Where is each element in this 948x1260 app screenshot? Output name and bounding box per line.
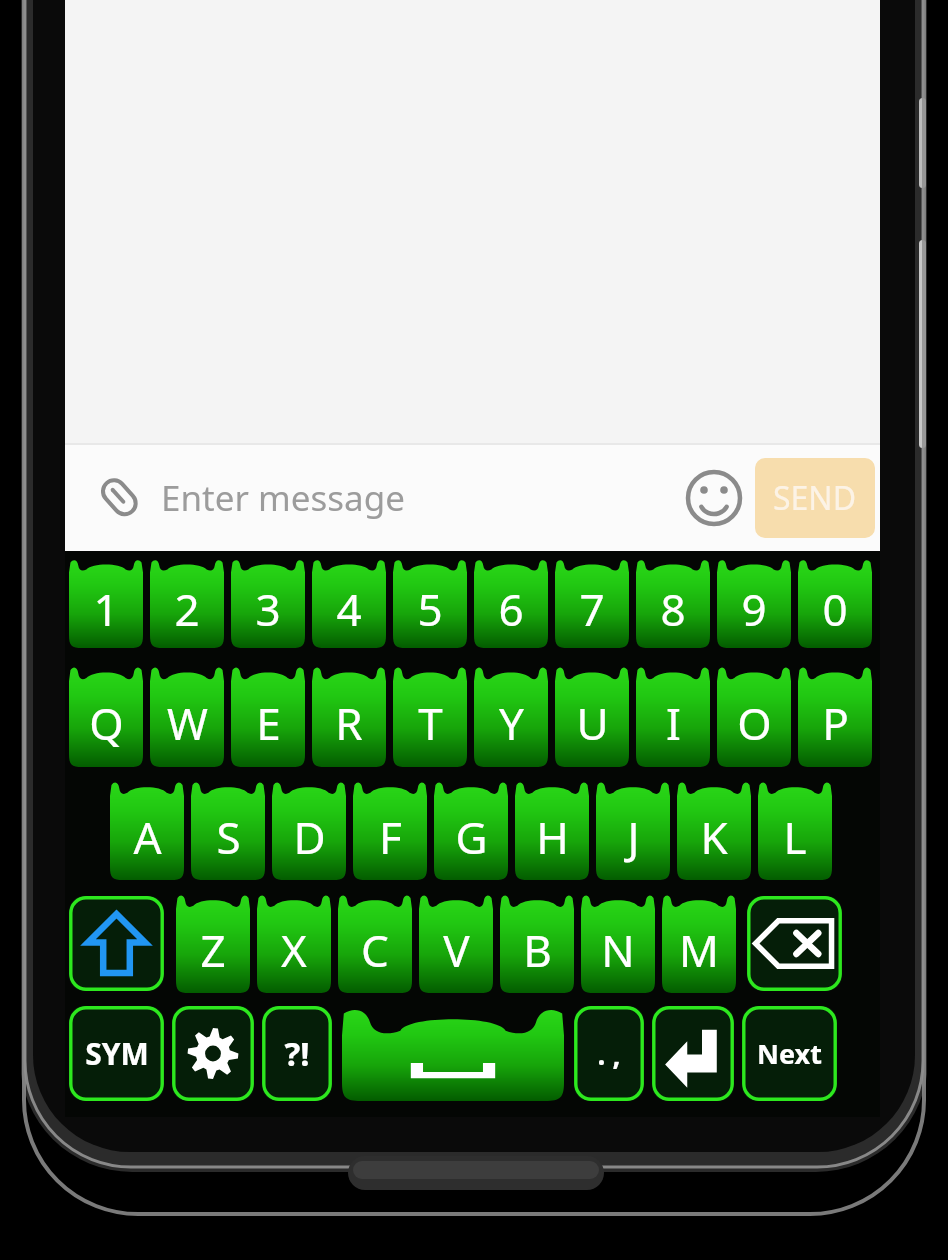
staticText: A xyxy=(133,807,162,867)
button[interactable]: Next xyxy=(742,1006,837,1101)
button[interactable]: . , xyxy=(574,1006,644,1101)
button[interactable]: T xyxy=(393,665,467,767)
staticText: Enter message xyxy=(161,474,681,522)
button[interactable]: Backspace xyxy=(747,896,842,991)
staticText: 8 xyxy=(660,579,686,639)
button[interactable]: 2 xyxy=(150,558,224,648)
button[interactable]: L xyxy=(758,780,832,880)
staticText: L xyxy=(783,807,807,867)
staticText: P xyxy=(822,693,849,753)
staticText: I xyxy=(666,693,681,753)
staticText: K xyxy=(700,807,728,867)
button[interactable]: E xyxy=(231,665,305,767)
staticText: V xyxy=(443,920,470,980)
staticText: D xyxy=(293,807,326,867)
staticText: 9 xyxy=(741,579,767,639)
staticText: 5 xyxy=(417,579,443,639)
button[interactable]: W xyxy=(150,665,224,767)
button[interactable]: J xyxy=(596,780,670,880)
staticText: B xyxy=(523,920,552,980)
staticText: U xyxy=(576,693,609,753)
staticText: ?! xyxy=(284,1031,310,1076)
staticText: X xyxy=(281,920,307,980)
button[interactable]: SEND xyxy=(755,458,875,538)
staticText: E xyxy=(256,693,281,753)
button[interactable]: Y xyxy=(474,665,548,767)
staticText: W xyxy=(167,693,208,753)
staticText: 2 xyxy=(174,579,200,639)
button[interactable]: R xyxy=(312,665,386,767)
button[interactable]: P xyxy=(798,665,872,767)
staticText: 3 xyxy=(255,579,281,639)
button[interactable]: 1 xyxy=(69,558,143,648)
button[interactable]: Settings xyxy=(172,1006,254,1101)
button[interactable]: 5 xyxy=(393,558,467,648)
button[interactable]: U xyxy=(555,665,629,767)
button[interactable]: V xyxy=(419,893,493,993)
button[interactable]: I xyxy=(636,665,710,767)
button[interactable]: M xyxy=(662,893,736,993)
button[interactable]: S xyxy=(191,780,265,880)
button[interactable]: Emoji xyxy=(681,465,747,531)
staticText: 1 xyxy=(93,579,119,639)
button[interactable]: 7 xyxy=(555,558,629,648)
staticText: N xyxy=(601,920,635,980)
button[interactable]: D xyxy=(272,780,346,880)
staticText: F xyxy=(379,807,402,867)
button[interactable]: Shift xyxy=(69,896,164,991)
staticText: Q xyxy=(89,693,124,753)
staticText: 0 xyxy=(822,579,848,639)
staticText: 7 xyxy=(579,579,605,639)
button[interactable]: Space xyxy=(342,1006,564,1101)
button[interactable]: Enter xyxy=(652,1006,734,1101)
staticText: J xyxy=(627,807,640,867)
button[interactable]: B xyxy=(500,893,574,993)
button[interactable]: K xyxy=(677,780,751,880)
staticText: T xyxy=(418,693,443,753)
button[interactable]: 9 xyxy=(717,558,791,648)
staticText: Z xyxy=(200,920,226,980)
staticText: S xyxy=(216,807,241,867)
button[interactable]: G xyxy=(434,780,508,880)
button[interactable]: 4 xyxy=(312,558,386,648)
staticText: G xyxy=(455,807,488,867)
button[interactable]: 0 xyxy=(798,558,872,648)
staticText: O xyxy=(737,693,772,753)
button[interactable]: ?! xyxy=(262,1006,332,1101)
button[interactable]: Attach file xyxy=(93,471,147,525)
button[interactable]: O xyxy=(717,665,791,767)
button[interactable]: N xyxy=(581,893,655,993)
button[interactable]: C xyxy=(338,893,412,993)
staticText: SEND xyxy=(773,476,857,520)
staticText: H xyxy=(536,807,569,867)
staticText: . , xyxy=(597,1035,621,1073)
button[interactable]: 8 xyxy=(636,558,710,648)
button[interactable]: A xyxy=(110,780,184,880)
staticText: SYM xyxy=(85,1033,149,1074)
button[interactable]: SYM xyxy=(69,1006,164,1101)
staticText: Y xyxy=(499,693,524,753)
button[interactable]: Z xyxy=(176,893,250,993)
staticText: Next xyxy=(757,1035,822,1072)
button[interactable]: 3 xyxy=(231,558,305,648)
button[interactable]: H xyxy=(515,780,589,880)
staticText: 4 xyxy=(336,579,362,639)
staticText: C xyxy=(361,920,389,980)
staticText: 6 xyxy=(498,579,524,639)
staticText: R xyxy=(335,693,363,753)
button[interactable]: 6 xyxy=(474,558,548,648)
button[interactable]: F xyxy=(353,780,427,880)
button[interactable]: X xyxy=(257,893,331,993)
staticText: M xyxy=(679,920,719,980)
button[interactable]: Q xyxy=(69,665,143,767)
